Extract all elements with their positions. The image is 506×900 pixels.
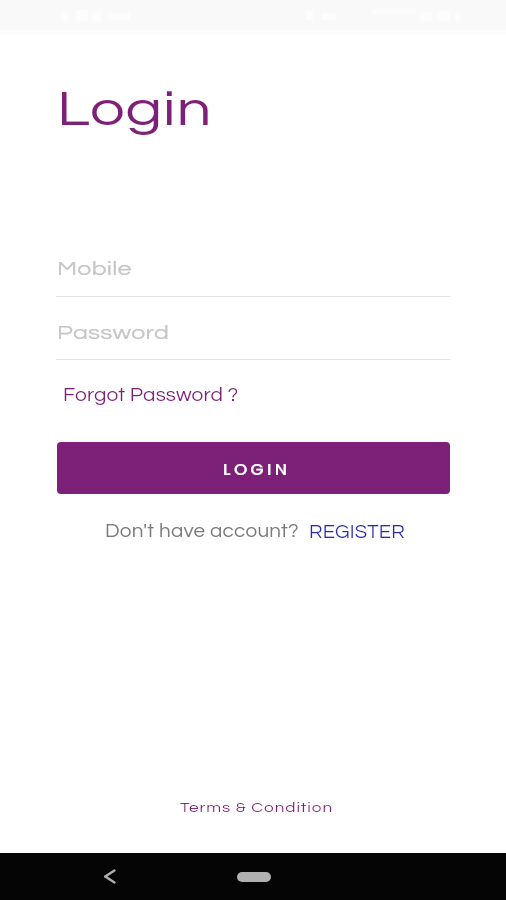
- staticText: Terms & Condition: [180, 800, 333, 815]
- button[interactable]: Mobile: [56, 249, 451, 297]
- staticText: Password: [57, 323, 170, 343]
- staticText: LOGIN: [223, 458, 291, 480]
- button[interactable]: Back: [100, 867, 119, 886]
- button[interactable]: Forgot Password ?: [56, 382, 230, 408]
- staticText: REGISTER: [309, 522, 405, 542]
- button[interactable]: Password: [56, 313, 451, 360]
- staticText: Login: [57, 85, 213, 135]
- button[interactable]: Terms & Condition: [180, 800, 310, 815]
- button[interactable]: LOGIN: [57, 442, 450, 494]
- button[interactable]: Home: [237, 872, 271, 882]
- staticText: Forgot Password ?: [63, 385, 239, 405]
- staticText: Don't have account?: [105, 521, 299, 541]
- staticText: Mobile: [57, 259, 132, 279]
- button[interactable]: REGISTER: [303, 518, 406, 546]
